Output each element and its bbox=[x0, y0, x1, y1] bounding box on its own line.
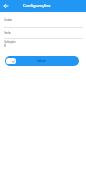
button[interactable]: Salvar bbox=[5, 56, 79, 66]
button[interactable]: Senha bbox=[0, 31, 86, 37]
staticText: Senha bbox=[4, 31, 11, 35]
staticText: Configurações bbox=[23, 3, 51, 8]
staticText: Salvar bbox=[37, 59, 46, 63]
button[interactable]: Usuário bbox=[0, 18, 86, 24]
staticText: B bbox=[4, 44, 6, 48]
staticText: Usuário bbox=[4, 18, 12, 22]
button[interactable]: Tipo Sanguíneo bbox=[0, 40, 86, 49]
staticText: Tipo Sanguíneo bbox=[4, 40, 16, 44]
button[interactable]: Back bbox=[0, 0, 12, 12]
